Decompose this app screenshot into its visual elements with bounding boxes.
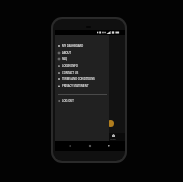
- button[interactable]: MY DASHBOARD: [55, 42, 109, 49]
- button[interactable]: CONTACT US: [55, 69, 109, 76]
- button[interactable]: TERMS AND CONDITIONS: [55, 75, 109, 82]
- button[interactable]: PRIVACY STATEMENT: [55, 82, 109, 89]
- button[interactable]: Recents: [106, 141, 112, 151]
- staticText: TERMS AND CONDITIONS: [62, 77, 95, 81]
- staticText: CONTACT US: [62, 71, 79, 75]
- button[interactable]: Home tab: [107, 133, 119, 141]
- button[interactable]: Back: [67, 141, 73, 151]
- button[interactable]: FAQ: [55, 55, 109, 62]
- staticText: PRIVACY STATEMENT: [62, 84, 89, 88]
- button[interactable]: LOGIN INFO: [55, 62, 109, 69]
- button[interactable]: ABOUT: [55, 49, 109, 56]
- staticText: Home: [110, 138, 116, 141]
- staticText: LOG OUT: [62, 99, 74, 103]
- staticText: MY DASHBOARD: [62, 44, 84, 48]
- staticText: ABOUT: [62, 51, 72, 55]
- staticText: LOGIN INFO: [62, 64, 78, 68]
- button[interactable]: LOG OUT: [55, 97, 109, 104]
- button[interactable]: Add: [107, 120, 114, 127]
- staticText: FAQ: [62, 57, 68, 61]
- button[interactable]: Home: [87, 141, 93, 151]
